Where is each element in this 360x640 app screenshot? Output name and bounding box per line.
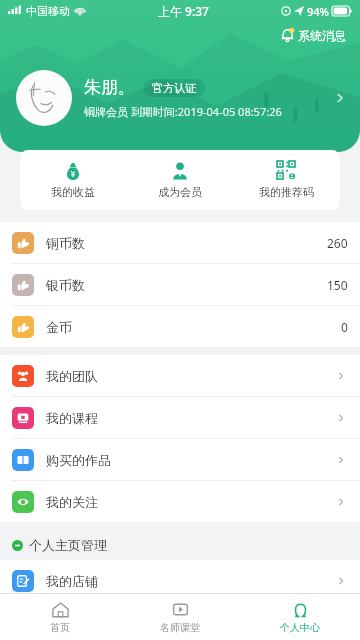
button[interactable]: 我的团队 [0, 355, 360, 396]
button[interactable]: 个人中心 [240, 594, 360, 640]
staticText: 上午 9:37 [158, 3, 209, 19]
staticText: 我的店铺 [46, 573, 98, 589]
button[interactable]: 购买的作品 [0, 439, 360, 480]
button[interactable]: 我的课程 [0, 397, 360, 438]
staticText: 官方认证 [152, 81, 196, 95]
button[interactable]: 金币 [0, 306, 360, 347]
staticText: 名师课堂 [160, 621, 200, 634]
staticText: 0 [341, 319, 348, 335]
staticText: 系统消息 [298, 28, 346, 43]
staticText: 94% [307, 4, 329, 19]
staticText: 成为会员 [158, 185, 202, 199]
staticText: 150 [327, 277, 348, 293]
staticText: 朱朋。 [84, 77, 135, 98]
button[interactable]: 银币数 [0, 264, 360, 305]
staticText: 中国移动 [26, 4, 70, 18]
button[interactable]: 我的关注 [0, 481, 360, 522]
staticText: 铜牌会员 到期时间:2019-04-05 08:57:26 [84, 104, 282, 119]
staticText: 我的课程 [46, 410, 98, 426]
button[interactable]: 系统消息 [276, 26, 350, 45]
staticText: 购买的作品 [46, 452, 111, 468]
staticText: 铜币数 [46, 235, 85, 251]
button[interactable]: 我的推荐码 [233, 150, 340, 210]
staticText: 我的收益 [51, 185, 95, 199]
staticText: 我的推荐码 [259, 185, 314, 199]
staticText: 个人主页管理 [29, 537, 107, 553]
button[interactable]: 首页 [0, 594, 120, 640]
staticText: 我的关注 [46, 494, 98, 510]
button[interactable]: 成为会员 [126, 150, 233, 210]
staticText: 个人中心 [280, 621, 320, 634]
button[interactable]: 名师课堂 [120, 594, 240, 640]
staticText: 金币 [46, 319, 72, 335]
button[interactable]: 铜币数 [0, 222, 360, 263]
staticText: 银币数 [46, 277, 85, 293]
button[interactable]: 朱朋。 [0, 70, 360, 126]
staticText: 我的团队 [46, 368, 98, 384]
staticText: 首页 [50, 621, 70, 634]
button[interactable]: 我的收益 [20, 150, 126, 210]
staticText: 260 [327, 235, 348, 251]
button[interactable]: 我的店铺 [0, 560, 360, 601]
